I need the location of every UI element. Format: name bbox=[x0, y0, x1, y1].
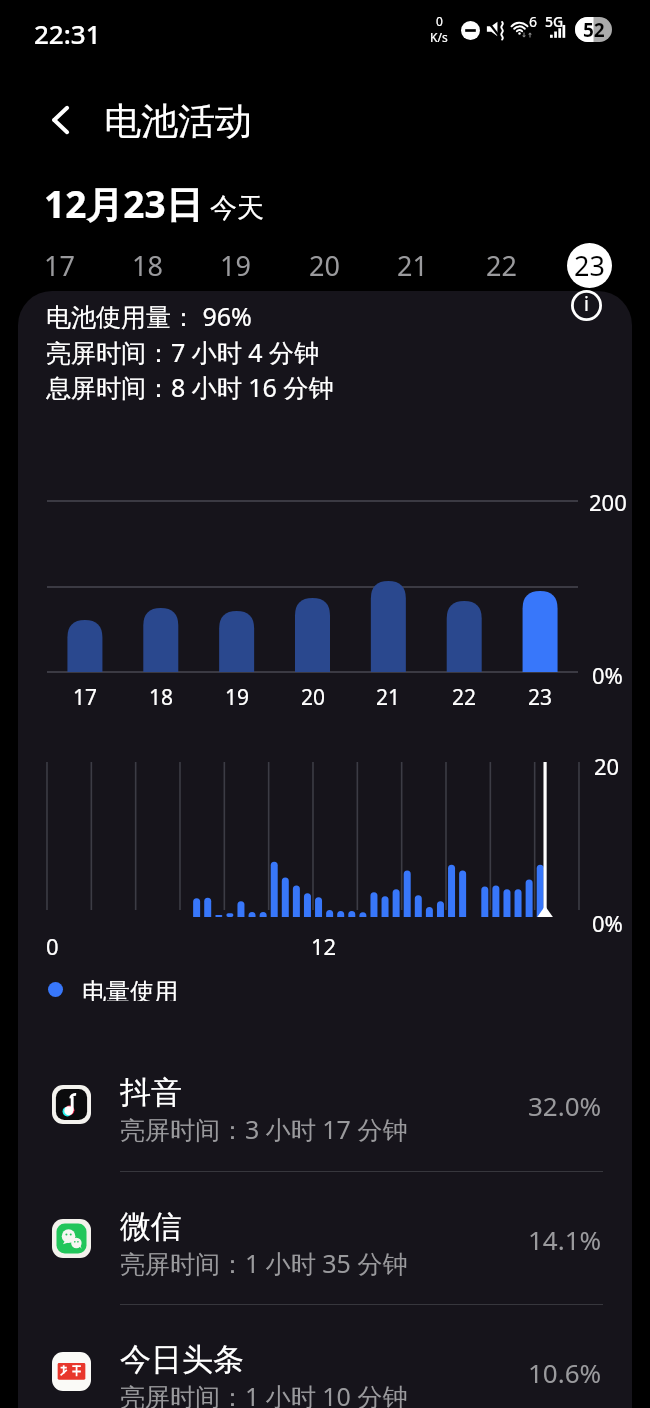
staticText: 22:31 bbox=[34, 16, 101, 51]
staticText: 0 bbox=[436, 13, 443, 29]
staticText: 20 bbox=[309, 247, 340, 284]
staticText: 0% bbox=[592, 908, 623, 938]
staticText: 电池使用量： 96% bbox=[46, 299, 252, 333]
staticText: 今天 bbox=[210, 191, 264, 225]
button[interactable]: Back bbox=[36, 95, 86, 145]
staticText: 5G bbox=[545, 12, 564, 31]
staticText: 20 bbox=[594, 751, 620, 781]
staticText: 14.1% bbox=[528, 1222, 602, 1257]
staticText: 52 bbox=[583, 17, 605, 42]
staticText: 23 bbox=[574, 247, 605, 284]
staticText: 息屏时间：8 小时 16 分钟 bbox=[46, 370, 334, 404]
staticText: 电池活动 bbox=[104, 98, 252, 145]
staticText: 22 bbox=[486, 247, 517, 284]
button[interactable]: 抖音 bbox=[18, 1038, 632, 1171]
staticText: 微信 bbox=[120, 1207, 182, 1246]
staticText: 12 bbox=[311, 931, 337, 961]
staticText: 亮屏时间：1 小时 35 分钟 bbox=[120, 1246, 408, 1280]
staticText: 19 bbox=[220, 247, 251, 284]
button[interactable]: Info bbox=[566, 285, 606, 325]
staticText: 亮屏时间：3 小时 17 分钟 bbox=[120, 1112, 408, 1146]
button[interactable]: 19 bbox=[205, 235, 265, 296]
staticText: 22 bbox=[452, 683, 477, 709]
staticText: 21 bbox=[397, 247, 428, 284]
staticText: 0 bbox=[46, 931, 59, 961]
button[interactable]: 23 bbox=[559, 235, 619, 296]
button[interactable]: 20 bbox=[294, 235, 354, 296]
button[interactable]: 18 bbox=[117, 235, 177, 296]
staticText: 200 bbox=[589, 487, 627, 517]
staticText: 20 bbox=[301, 683, 326, 709]
button[interactable]: 微信 bbox=[18, 1172, 632, 1305]
staticText: 12月23日 bbox=[44, 178, 203, 229]
staticText: 21 bbox=[376, 683, 401, 709]
staticText: 18 bbox=[132, 247, 163, 284]
staticText: 0% bbox=[592, 660, 623, 690]
staticText: 6 bbox=[529, 12, 538, 31]
staticText: 10.6% bbox=[528, 1355, 602, 1390]
button[interactable]: 21 bbox=[382, 235, 442, 296]
staticText: 抖音 bbox=[120, 1073, 182, 1112]
button[interactable]: 22 bbox=[471, 235, 531, 296]
staticText: 17 bbox=[44, 247, 75, 284]
staticText: 亮屏时间：7 小时 4 分钟 bbox=[46, 335, 320, 369]
staticText: i bbox=[584, 291, 589, 317]
staticText: 亮屏时间：1 小时 10 分钟 bbox=[120, 1379, 408, 1408]
button[interactable]: 今日头条 bbox=[18, 1305, 632, 1408]
staticText: 17 bbox=[73, 683, 98, 709]
staticText: 今日头条 bbox=[120, 1340, 244, 1379]
staticText: 18 bbox=[149, 683, 174, 709]
staticText: 电量使用 bbox=[82, 977, 178, 1001]
button[interactable]: 17 bbox=[29, 235, 89, 296]
staticText: 32.0% bbox=[528, 1088, 602, 1123]
staticText: K/s bbox=[430, 29, 448, 45]
staticText: 19 bbox=[225, 683, 250, 709]
staticText: 23 bbox=[528, 683, 553, 709]
